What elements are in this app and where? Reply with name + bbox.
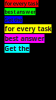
staticText: Get the (4, 16, 22, 23)
staticText: for every task (4, 0, 38, 7)
staticText: best answer (4, 8, 35, 15)
staticText: Get the (4, 44, 29, 53)
staticText: best answer (4, 34, 44, 43)
staticText: for every task (4, 24, 51, 33)
